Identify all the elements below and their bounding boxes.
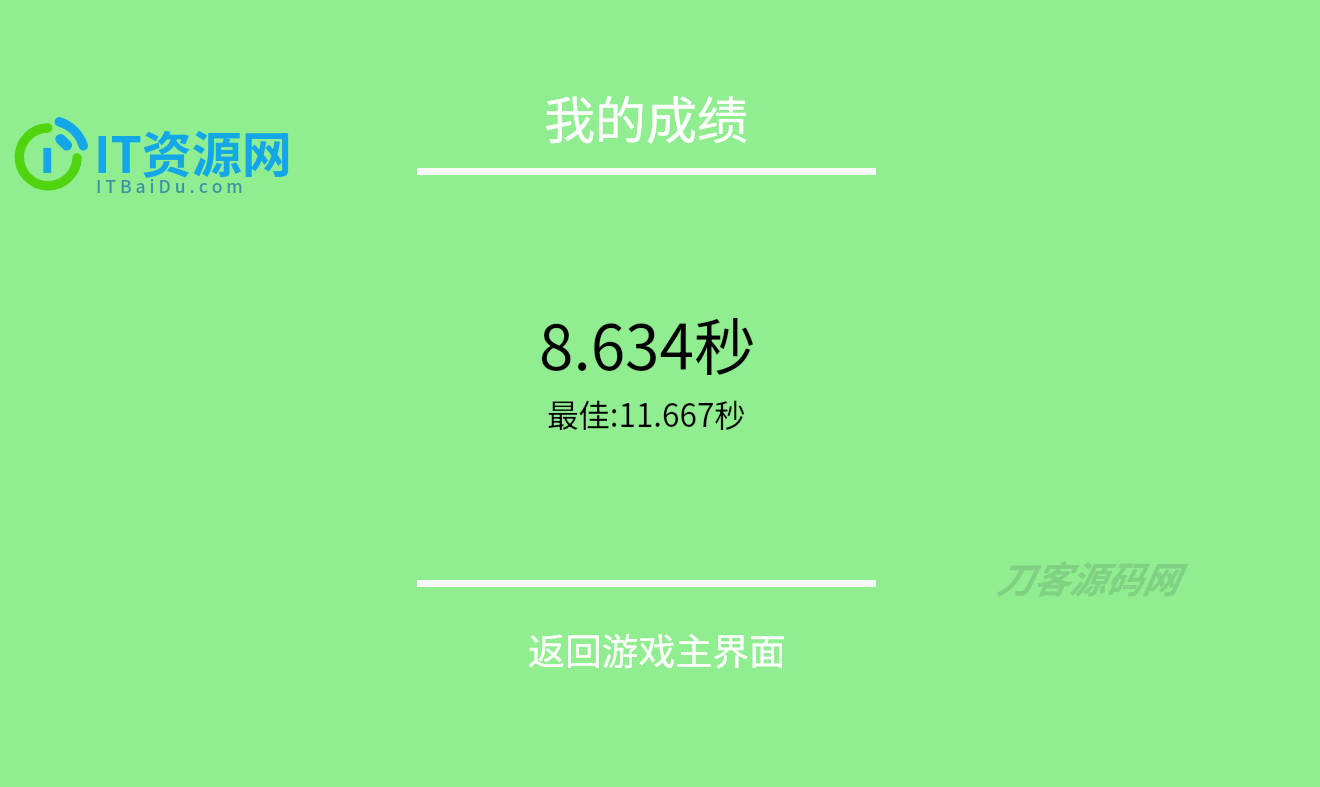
other: IT资源网 logo <box>8 112 96 200</box>
staticText: 我的成绩 <box>544 80 749 154</box>
button[interactable]: 返回游戏主界面 <box>427 608 886 688</box>
staticText: 8.634秒 <box>539 298 756 388</box>
staticText: 返回游戏主界面 <box>528 622 786 675</box>
staticText: 刀客源码网 <box>996 551 1178 604</box>
staticText: IT资源网 <box>94 115 292 187</box>
staticText: 最佳:11.667秒 <box>547 391 746 436</box>
staticText: I T B a i D u . c o m <box>96 173 243 198</box>
